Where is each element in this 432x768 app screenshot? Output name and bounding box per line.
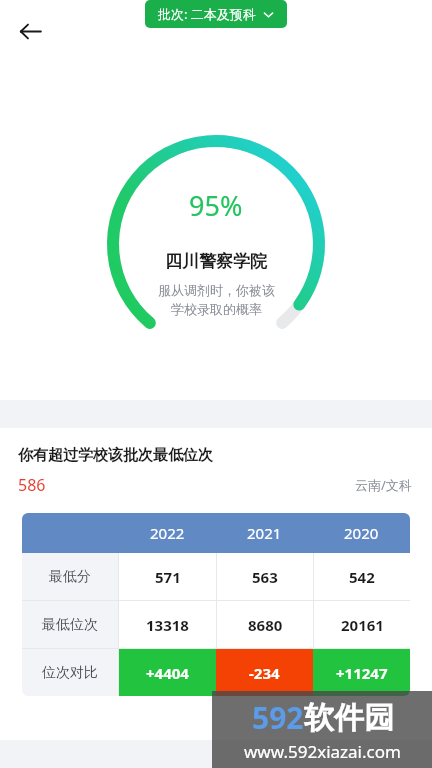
staticText: www.592xiazai.com <box>244 740 401 763</box>
staticText: 586 <box>18 474 46 496</box>
staticText: 95% <box>189 187 243 224</box>
staticText: 批次: 二本及预科 <box>158 5 256 23</box>
staticText: 2022 <box>150 523 185 543</box>
button[interactable]: 批次: 二本及预科 <box>145 0 287 28</box>
staticText: +11247 <box>336 663 388 683</box>
staticText: -234 <box>249 663 280 683</box>
staticText: 592 <box>252 697 304 738</box>
staticText: 2021 <box>247 523 282 543</box>
staticText: 云南/文科 <box>355 476 412 494</box>
staticText: 学校录取的概率 <box>171 301 262 317</box>
staticText: 563 <box>252 567 278 587</box>
staticText: +4404 <box>146 663 189 683</box>
staticText: 542 <box>349 567 375 587</box>
staticText: 服从调剂时，你被该 <box>158 282 275 298</box>
staticText: 20161 <box>341 615 384 635</box>
staticText: 13318 <box>146 615 189 635</box>
staticText: 最低分 <box>49 568 91 586</box>
staticText: 软件园 <box>304 699 394 737</box>
staticText: 8680 <box>248 615 283 635</box>
staticText: 2020 <box>344 523 379 543</box>
staticText: 位次对比 <box>42 664 98 682</box>
staticText: 571 <box>155 567 181 587</box>
staticText: 你有超过学校该批次最低位次 <box>18 446 213 465</box>
staticText: 四川警察学院 <box>165 251 267 272</box>
staticText: 最低位次 <box>42 616 98 634</box>
button[interactable]: Back <box>10 11 50 51</box>
